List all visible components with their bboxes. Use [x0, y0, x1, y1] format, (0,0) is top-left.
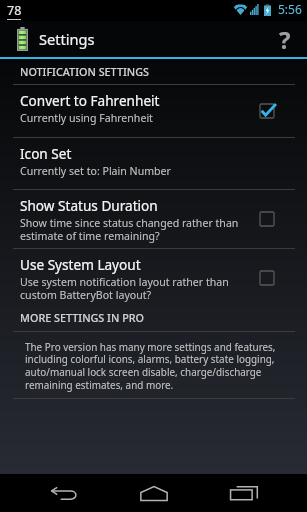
button[interactable]: Toggle Use System Layout: [243, 249, 291, 306]
staticText: 78: [7, 2, 22, 19]
button[interactable]: Toggle Show Status Duration: [243, 190, 291, 248]
staticText: ?: [279, 23, 291, 56]
staticText: Show time since status changed rather th…: [20, 216, 239, 243]
staticText: Settings: [39, 29, 95, 49]
staticText: Use system notification layout rather th…: [20, 275, 229, 302]
button[interactable]: Recent apps: [199, 474, 289, 512]
staticText: Convert to Fahrenheit: [20, 91, 160, 110]
button[interactable]: Help: [265, 21, 307, 57]
button[interactable]: Use System Layout: [0, 249, 307, 306]
button[interactable]: Home: [109, 474, 199, 512]
button[interactable]: Icon Set: [0, 138, 307, 189]
staticText: Show Status Duration: [20, 196, 158, 215]
staticText: Icon Set: [20, 144, 72, 163]
staticText: Currently using Fahrenheit: [20, 111, 153, 125]
staticText: NOTIFICATION SETTINGS: [20, 64, 149, 79]
staticText: MORE SETTINGS IN PRO: [20, 310, 145, 325]
staticText: Use System Layout: [20, 255, 141, 274]
button[interactable]: Back: [19, 474, 109, 512]
button[interactable]: Convert to Fahrenheit: [0, 85, 307, 137]
staticText: The Pro version has many more settings a…: [25, 340, 276, 392]
button[interactable]: Show Status Duration: [0, 190, 307, 248]
staticText: Currently set to: Plain Number: [20, 164, 171, 178]
button[interactable]: Toggle Convert to Fahrenheit: [243, 85, 291, 137]
staticText: 5:56: [278, 1, 302, 17]
